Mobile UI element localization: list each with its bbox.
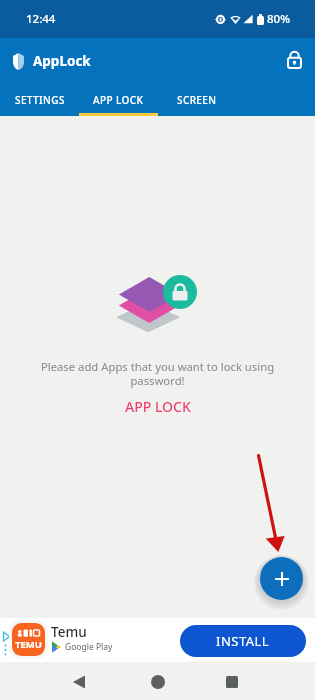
staticText: APP LOCK <box>125 397 191 416</box>
staticText: 80% <box>267 11 290 27</box>
button[interactable]: APP LOCK <box>79 84 158 116</box>
staticText: SETTINGS <box>15 93 65 107</box>
staticText: Google Play <box>65 641 113 653</box>
staticText: Please add Apps that you want to lock us… <box>36 359 279 388</box>
staticText: TEMU <box>15 638 42 651</box>
button[interactable]: Back <box>59 663 99 700</box>
staticText: 12:44 <box>26 11 56 27</box>
staticText: SCREEN <box>177 93 217 107</box>
staticText: Temu <box>51 623 87 641</box>
staticText: INSTALL <box>216 632 270 650</box>
staticText: AppLock <box>33 52 91 70</box>
button[interactable]: Lock <box>276 42 312 78</box>
button[interactable]: INSTALL <box>180 625 306 657</box>
button[interactable]: Add app to lock <box>260 557 303 600</box>
button[interactable]: APP LOCK <box>115 394 201 419</box>
button[interactable]: SETTINGS <box>0 84 79 116</box>
button[interactable]: Home <box>138 663 178 700</box>
button[interactable]: SCREEN <box>158 84 235 116</box>
button[interactable]: Recents <box>212 663 252 700</box>
staticText: APP LOCK <box>93 93 144 107</box>
